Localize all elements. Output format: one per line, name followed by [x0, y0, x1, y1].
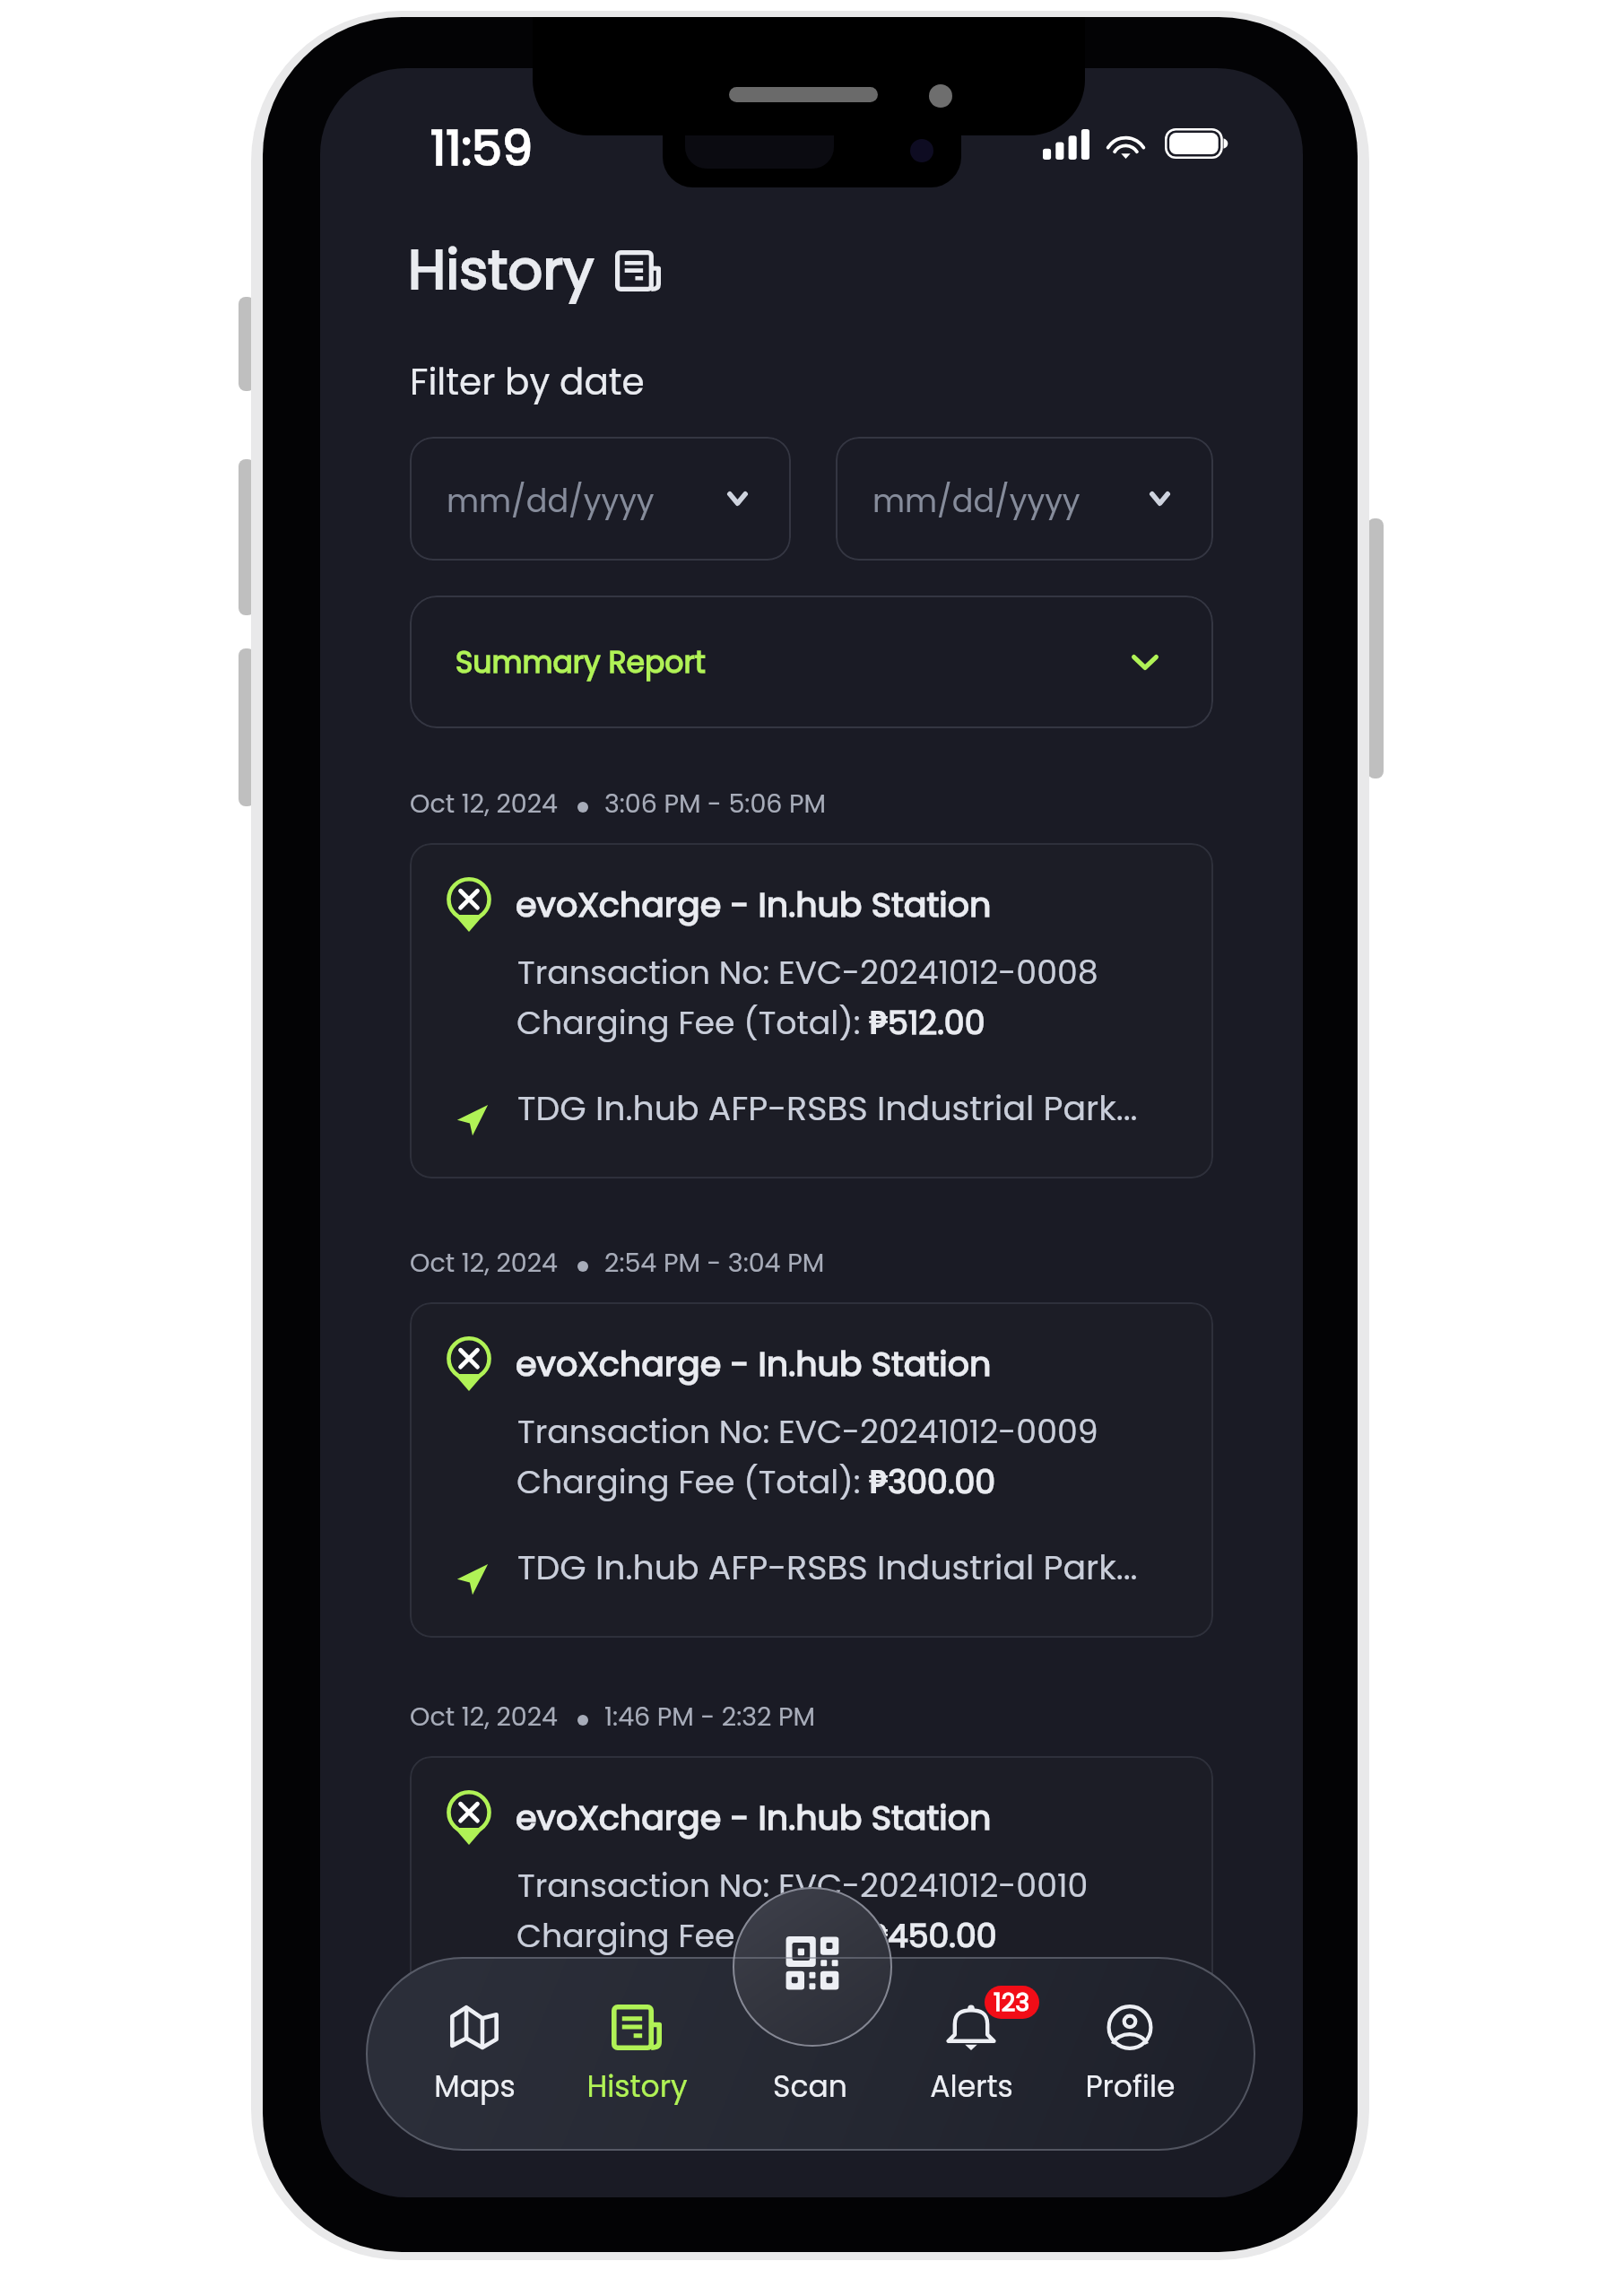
- staticText: 3:06 PM - 5:06 PM: [604, 786, 827, 822]
- button[interactable]: evoXcharge - In.hub Station: [410, 1756, 1213, 2092]
- staticText: 11:59: [430, 114, 533, 182]
- staticText: evoXcharge - In.hub Station: [516, 1340, 992, 1387]
- button[interactable]: Summary Report: [410, 596, 1213, 728]
- staticText: Profile: [1085, 2066, 1176, 2107]
- staticText: Maps: [434, 2066, 516, 2107]
- staticText: Charging Fee (Total): ₱450.00: [516, 1912, 997, 1959]
- staticText: History: [408, 231, 595, 308]
- staticText: History: [586, 2066, 688, 2107]
- staticText: 2:54 PM - 3:04 PM: [604, 1245, 825, 1281]
- staticText: 1:46 PM - 2:32 PM: [604, 1699, 816, 1735]
- button[interactable]: Maps: [403, 2004, 546, 2140]
- button[interactable]: evoXcharge - In.hub Station: [410, 843, 1213, 1178]
- staticText: Charging Fee (Total): ₱300.00: [516, 1458, 996, 1505]
- button[interactable]: Profile: [1058, 2004, 1202, 2140]
- staticText: Scan: [773, 2066, 847, 2107]
- button[interactable]: 123: [899, 2004, 1043, 2140]
- staticText: TDG In.hub AFP-RSBS Industrial Park...: [517, 1084, 1138, 1132]
- button[interactable]: History: [565, 2004, 708, 2140]
- button[interactable]: Scan QR code: [733, 1887, 892, 2047]
- button[interactable]: Transaction report: [604, 239, 672, 302]
- staticText: TDG In.hub AFP-RSBS Industrial Park...: [517, 1997, 1138, 2045]
- staticText: evoXcharge - In.hub Station: [516, 881, 992, 928]
- staticText: mm/dd/yyyy: [447, 479, 655, 523]
- staticText: Alerts: [930, 2066, 1013, 2107]
- staticText: Charging Fee (Total): ₱512.00: [516, 999, 985, 1046]
- button[interactable]: mm/dd/yyyy: [410, 437, 791, 561]
- staticText: Transaction No: EVC-20241012-0009: [517, 1409, 1098, 1455]
- button[interactable]: evoXcharge - In.hub Station: [410, 1302, 1213, 1638]
- button[interactable]: [366, 1957, 1255, 2151]
- button[interactable]: mm/dd/yyyy: [836, 437, 1213, 561]
- staticText: Transaction No: EVC-20241012-0008: [517, 950, 1098, 996]
- staticText: Transaction No: EVC-20241012-0010: [517, 1863, 1089, 1909]
- staticText: Summary Report: [456, 641, 706, 683]
- staticText: Oct 12, 2024: [410, 1699, 559, 1735]
- staticText: Oct 12, 2024: [410, 1245, 559, 1281]
- staticText: evoXcharge - In.hub Station: [516, 1794, 992, 1841]
- staticText: Oct 12, 2024: [410, 786, 559, 822]
- staticText: 123: [994, 1986, 1030, 2019]
- staticText: TDG In.hub AFP-RSBS Industrial Park...: [517, 1544, 1138, 1591]
- staticText: Filter by date: [410, 356, 645, 407]
- staticText: mm/dd/yyyy: [872, 479, 1081, 523]
- button[interactable]: Scan: [738, 2004, 881, 2140]
